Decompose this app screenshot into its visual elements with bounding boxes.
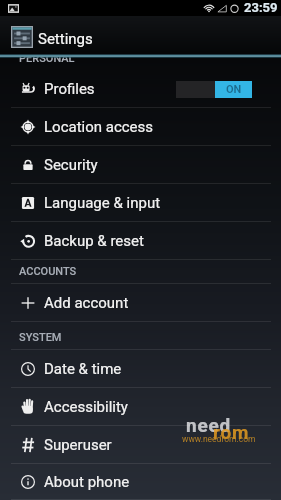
button[interactable]: About phone <box>0 464 281 500</box>
button[interactable]: Profiles on <box>176 81 252 98</box>
button[interactable]: Date & time <box>0 350 281 388</box>
staticText: Language & input <box>44 194 161 212</box>
button[interactable]: Add account <box>0 284 281 322</box>
staticText: Settings <box>38 30 93 48</box>
staticText: Add account <box>44 294 129 312</box>
staticText: Security <box>44 156 98 174</box>
button[interactable]: Accessibility <box>0 388 281 426</box>
staticText: www.needrom.com <box>182 434 256 444</box>
staticText: Superuser <box>44 436 112 454</box>
staticText: need <box>186 414 232 436</box>
button[interactable]: Location access <box>0 108 281 146</box>
staticText: ACCOUNTS <box>19 265 77 278</box>
staticText: ON <box>226 83 242 96</box>
staticText: SYSTEM <box>19 331 62 344</box>
button[interactable]: Security <box>0 146 281 184</box>
button[interactable]: Settings <box>0 16 281 55</box>
staticText: About phone <box>44 473 130 491</box>
staticText: Accessibility <box>44 398 128 416</box>
button[interactable]: Profiles <box>0 70 281 108</box>
staticText: rom <box>213 421 250 443</box>
staticText: 23:59 <box>244 0 278 15</box>
button[interactable]: Backup & reset <box>0 222 281 260</box>
staticText: Location access <box>44 118 154 136</box>
staticText: Profiles <box>44 80 95 98</box>
staticText: Date & time <box>44 360 122 378</box>
staticText: Backup & reset <box>44 232 144 250</box>
staticText: PERSONAL <box>19 52 75 65</box>
button[interactable]: Superuser <box>0 426 281 464</box>
button[interactable]: Language & input <box>0 184 281 222</box>
